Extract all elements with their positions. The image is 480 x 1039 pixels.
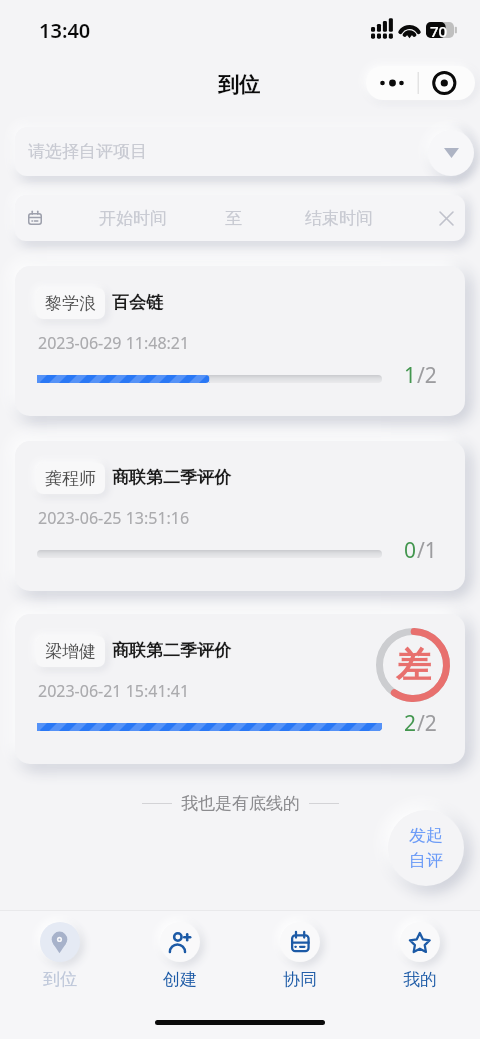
staticText: /2 bbox=[417, 361, 437, 390]
staticText: 到位 bbox=[218, 72, 260, 98]
staticText: 2 bbox=[404, 709, 417, 738]
button[interactable]: 创建 bbox=[120, 922, 240, 990]
button[interactable]: 请选择自评项目 bbox=[15, 127, 465, 176]
staticText: 请选择自评项目 bbox=[28, 141, 147, 162]
button[interactable]: 我的 bbox=[360, 922, 480, 990]
button[interactable]: 黎学浪 bbox=[15, 266, 465, 416]
staticText: 发起 bbox=[409, 825, 443, 846]
staticText: 黎学浪 bbox=[45, 293, 96, 314]
staticText: 2023-06-25 13:51:16 bbox=[38, 507, 190, 529]
button[interactable]: 发起 bbox=[388, 810, 464, 886]
button[interactable]: Clear bbox=[440, 212, 453, 225]
staticText: 协同 bbox=[283, 969, 317, 990]
button[interactable]: 龚程师 bbox=[15, 441, 465, 591]
staticText: /1 bbox=[417, 536, 437, 565]
staticText: 创建 bbox=[163, 969, 197, 990]
staticText: 2023-06-21 15:41:41 bbox=[38, 680, 190, 702]
button[interactable]: 到位 bbox=[0, 922, 120, 990]
staticText: 自评 bbox=[409, 850, 443, 871]
staticText: 差 bbox=[396, 643, 431, 687]
staticText: 13:40 bbox=[39, 17, 91, 44]
staticText: 到位 bbox=[43, 969, 77, 990]
staticText: 结束时间 bbox=[305, 208, 373, 229]
staticText: 我也是有底线的 bbox=[181, 793, 300, 814]
staticText: 我的 bbox=[403, 969, 437, 990]
staticText: 龚程师 bbox=[45, 468, 96, 489]
staticText: 商联第二季评价 bbox=[112, 467, 231, 488]
button[interactable]: 开始时间 bbox=[15, 195, 465, 241]
staticText: 商联第二季评价 bbox=[112, 640, 231, 661]
staticText: 0 bbox=[404, 536, 417, 565]
button[interactable]: More options bbox=[366, 66, 475, 100]
staticText: 1 bbox=[404, 361, 417, 390]
staticText: /2 bbox=[417, 709, 437, 738]
staticText: 至 bbox=[225, 208, 242, 229]
button[interactable]: Dropdown bbox=[428, 130, 474, 176]
button[interactable]: 协同 bbox=[240, 922, 360, 990]
button[interactable]: 梁增健 bbox=[15, 614, 465, 764]
staticText: 梁增健 bbox=[45, 641, 96, 662]
staticText: 2023-06-29 11:48:21 bbox=[38, 332, 190, 354]
staticText: 百会链 bbox=[112, 292, 163, 313]
staticText: 开始时间 bbox=[99, 208, 167, 229]
staticText: 70 bbox=[430, 21, 448, 41]
